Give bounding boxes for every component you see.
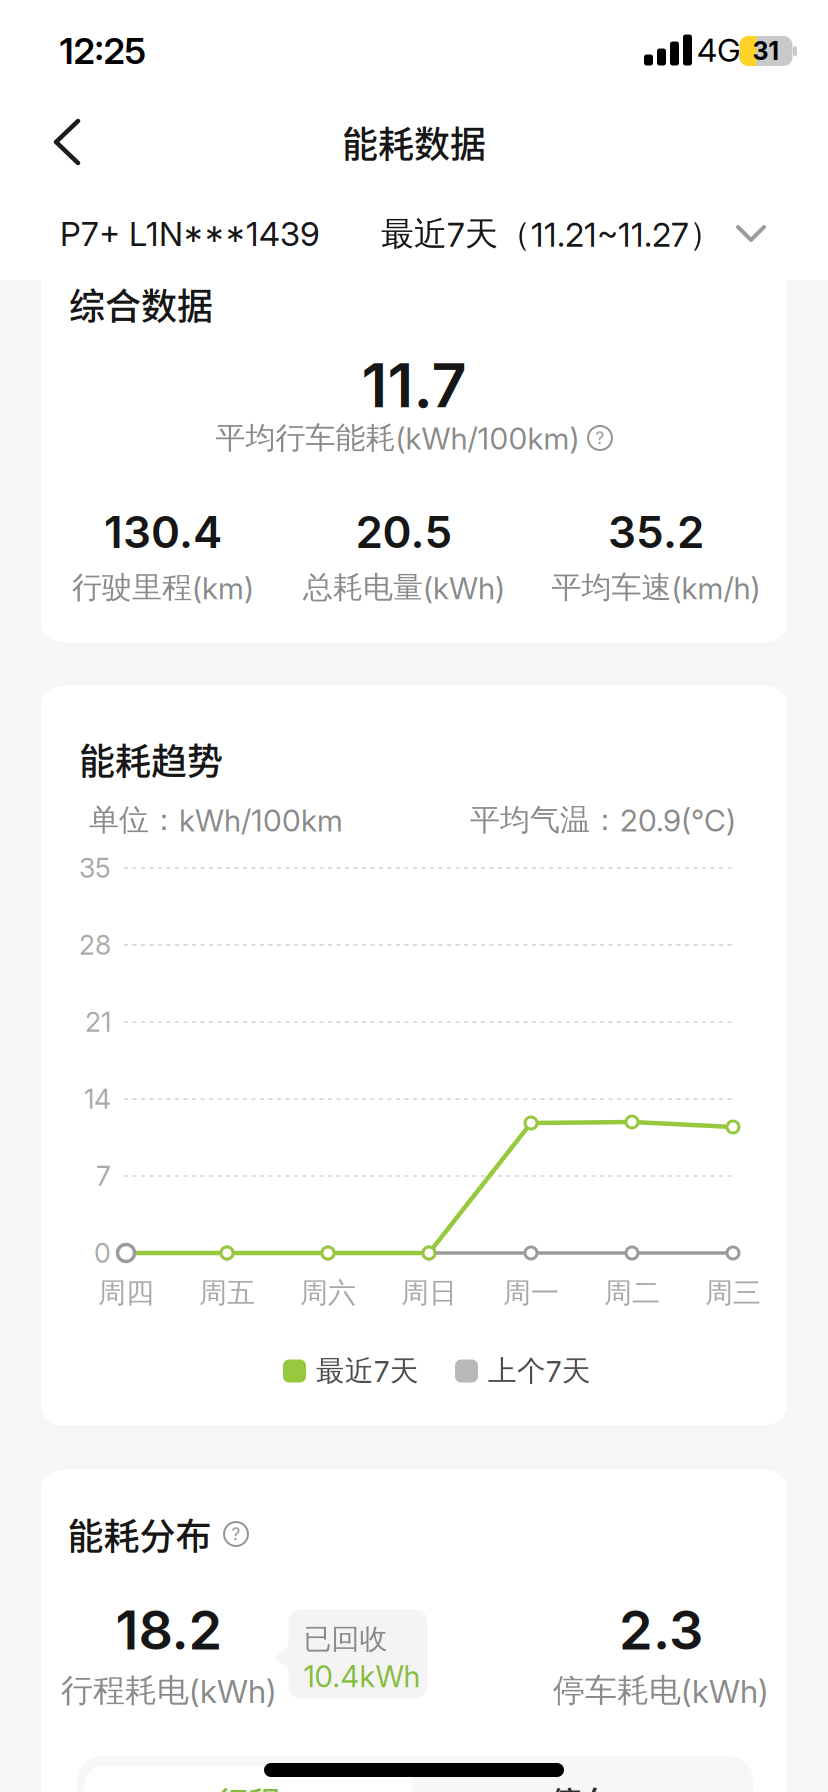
staticText: 平均气温：20.9(°C)	[470, 801, 736, 839]
staticText: 平均车速(km/h)	[551, 569, 760, 606]
staticText: 能耗数据	[342, 116, 486, 168]
staticText: 35	[79, 852, 111, 884]
button[interactable]: 说明	[223, 1521, 248, 1546]
staticText: 12:25	[59, 29, 146, 73]
staticText: 4G	[697, 31, 741, 69]
button[interactable]: Back	[36, 107, 96, 177]
staticText: 28	[79, 929, 111, 961]
staticText: ?	[231, 1524, 240, 1544]
staticText: 周三	[705, 1275, 761, 1311]
staticText: 能耗趋势	[79, 733, 223, 785]
staticText: 0	[94, 1237, 111, 1269]
staticText: 130.4	[104, 505, 222, 559]
button[interactable]: 最近7天（11.21~11.27）	[296, 199, 766, 269]
staticText: 31	[752, 36, 779, 66]
staticText: 2.3	[619, 1597, 703, 1662]
staticText: 35.2	[608, 505, 704, 559]
staticText: 行驶里程(km)	[72, 569, 254, 606]
staticText: 已回收	[303, 1621, 387, 1657]
staticText: 能耗分布	[67, 1508, 211, 1560]
staticText: 7	[96, 1160, 111, 1192]
staticText: P7+ L1N***1439	[60, 214, 320, 254]
staticText: 10.4kWh	[303, 1659, 420, 1694]
staticText: 周五	[199, 1275, 255, 1311]
staticText: 周一	[503, 1275, 559, 1311]
button[interactable]: 说明	[587, 425, 612, 450]
staticText: 周六	[300, 1275, 356, 1311]
staticText: 综合数据	[69, 278, 213, 330]
staticText: 平均行车能耗(kWh/100km)	[215, 419, 579, 457]
staticText: 停车耗电(kWh)	[553, 1670, 769, 1711]
staticText: 21	[85, 1006, 111, 1038]
staticText: 周四	[98, 1275, 154, 1311]
staticText: 11.7	[361, 348, 466, 422]
staticText: 停车	[549, 1778, 613, 1792]
staticText: 行程耗电(kWh)	[61, 1670, 277, 1711]
staticText: 14	[84, 1083, 111, 1115]
staticText: 上个7天	[488, 1353, 591, 1389]
staticText: 周二	[604, 1275, 660, 1311]
staticText: 18.2	[115, 1597, 222, 1662]
button[interactable]: 停车	[415, 1761, 748, 1792]
staticText: 总耗电量(kWh)	[303, 569, 505, 606]
staticText: ?	[595, 428, 604, 448]
staticText: 最近7天	[316, 1353, 419, 1389]
staticText: 最近7天（11.21~11.27）	[381, 213, 722, 255]
staticText: 行程	[216, 1778, 280, 1792]
button[interactable]: 行程	[82, 1761, 415, 1792]
staticText: 单位：kWh/100km	[89, 801, 343, 839]
staticText: 周日	[401, 1275, 457, 1311]
staticText: 20.5	[355, 505, 452, 559]
